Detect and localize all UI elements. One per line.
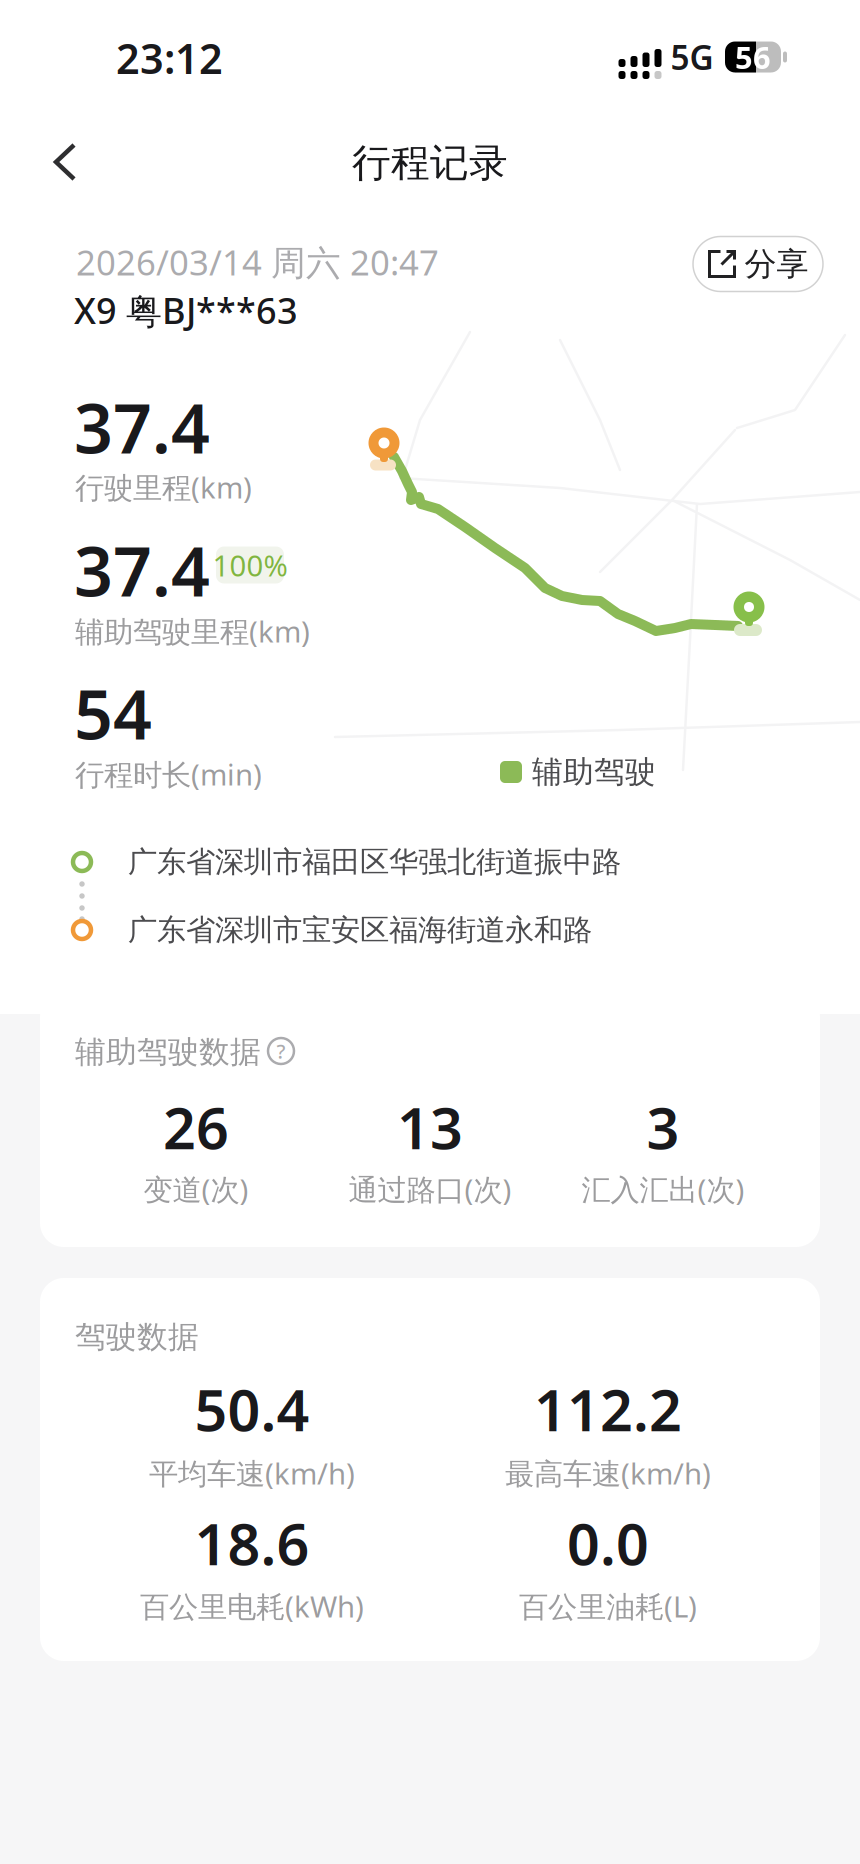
staticText: ? — [276, 1038, 285, 1064]
staticText: 23:12 — [116, 31, 223, 85]
staticText: X9 粤BJ***63 — [74, 286, 298, 334]
staticText: 112.2 — [534, 1371, 682, 1447]
staticText: 37.4 — [74, 525, 210, 615]
staticText: 50.4 — [194, 1371, 309, 1447]
staticText: 辅助驾驶 — [532, 753, 656, 791]
staticText: 百公里电耗(kWh) — [140, 1586, 364, 1625]
staticText: 37.4 — [74, 382, 210, 472]
staticText: 辅助驾驶数据 — [75, 1033, 261, 1071]
staticText: 广东省深圳市宝安区福海街道永和路 — [128, 912, 592, 948]
staticText: 汇入汇出(次) — [581, 1169, 744, 1208]
staticText: 通过路口(次) — [348, 1169, 511, 1208]
staticText: 变道(次) — [143, 1169, 248, 1208]
staticText: 行驶里程(km) — [75, 467, 252, 506]
staticText: 2026/03/14 周六 20:47 — [76, 239, 439, 285]
staticText: 行程记录 — [352, 139, 508, 187]
staticText: 分享 — [744, 244, 808, 284]
staticText: 驾驶数据 — [75, 1318, 199, 1356]
button[interactable]: Back — [40, 134, 100, 190]
staticText: 平均车速(km/h) — [149, 1453, 355, 1492]
staticText: 54 — [74, 668, 152, 758]
staticText: 辅助驾驶里程(km) — [75, 611, 310, 650]
staticText: 18.6 — [194, 1505, 309, 1581]
staticText: 26 — [163, 1089, 229, 1165]
staticText: 行程时长(min) — [75, 754, 262, 793]
staticText: 13 — [397, 1089, 463, 1165]
button[interactable]: 分享 — [693, 236, 823, 291]
staticText: 百公里油耗(L) — [519, 1586, 697, 1625]
staticText: 0.0 — [567, 1505, 649, 1581]
button[interactable]: 辅助驾驶数据说明 — [264, 1034, 298, 1068]
staticText: 56 — [735, 37, 771, 77]
staticText: 最高车速(km/h) — [505, 1453, 711, 1492]
staticText: 3 — [646, 1089, 679, 1165]
staticText: 100% — [212, 545, 287, 584]
staticText: 5G — [670, 35, 713, 79]
staticText: 广东省深圳市福田区华强北街道振中路 — [128, 844, 621, 880]
